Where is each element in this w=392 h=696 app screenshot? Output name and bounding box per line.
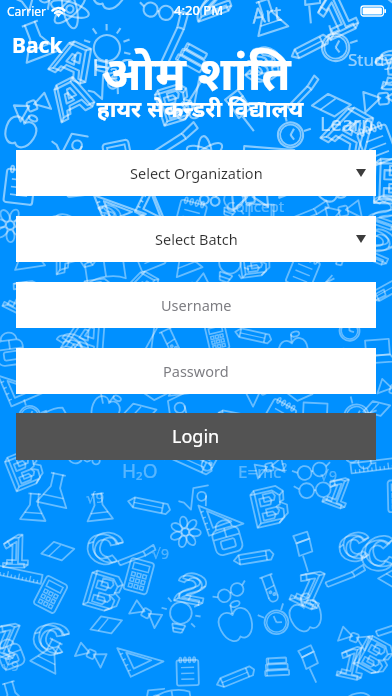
other: Battery [361,6,386,16]
button[interactable]: Login [16,413,376,460]
button[interactable]: Username [16,282,376,328]
other: Wi-Fi [51,6,66,17]
staticText: √9 [300,594,317,613]
staticText: √9 [2,656,19,675]
button[interactable]: Back [0,27,73,64]
staticText: 4:20 PM [174,1,224,19]
staticText: √9 [86,487,105,507]
staticText: Study [348,48,392,71]
other: Expand [356,169,366,177]
button[interactable]: Select Batch [16,216,376,262]
staticText: Concept [226,196,285,216]
staticText: Password [163,361,229,381]
staticText: √9 [152,544,169,563]
staticText: E=mc² [238,460,288,483]
staticText: Username [161,295,232,315]
other: Expand [356,235,366,243]
staticText: Login [172,424,220,449]
staticText: हायर सेकन्डरी विद्यालय [4,92,392,123]
staticText: ओम शांति [0,40,392,104]
staticText: Art [251,0,283,30]
staticText: Select Organization [130,163,263,183]
staticText: H₂O [92,50,137,83]
staticText: Back [12,31,63,60]
staticText: √9 [320,466,337,485]
staticText: Carrier [7,3,47,19]
staticText: H₂O [122,458,158,484]
staticText: Learn [320,110,374,137]
button[interactable]: Password [16,348,376,394]
button[interactable]: Select Organization [16,150,376,196]
staticText: Select Batch [155,229,238,249]
